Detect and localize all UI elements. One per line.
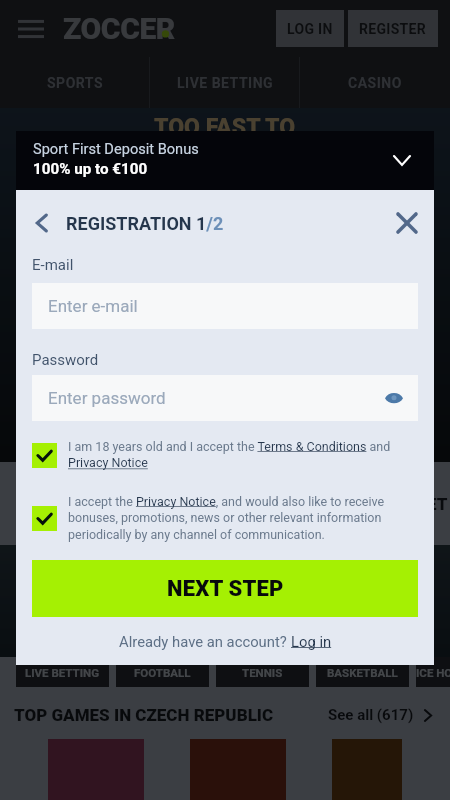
staticText: Enter password [48,388,166,408]
staticText: I am 18 years old and I accept the Terms… [68,439,418,471]
staticText: See all (617) [328,706,414,724]
button[interactable]: NEXT STEP [32,560,418,617]
button[interactable]: TOP GAMES IN CZECH REPUBLIC [14,705,434,725]
button[interactable]: REGISTER [348,10,438,47]
staticText: BASKETBALL [327,666,398,679]
staticText: ICE HOCKEY [416,666,450,679]
button[interactable]: Enter e-mail [32,283,418,329]
staticText: TENNIS [242,666,283,679]
button[interactable]: Back [32,213,52,233]
staticText: LOG IN [287,21,333,37]
staticText: SLEEP [191,142,259,169]
button[interactable]: Close [398,214,416,232]
staticText: SPORTS [47,75,104,91]
button[interactable]: BASKETBALL [316,657,409,687]
button[interactable]: Enter password [32,375,418,421]
staticText: REGISTER [359,21,427,37]
button[interactable]: ICE HOCKEY [416,657,450,687]
button[interactable]: SPORTS [0,57,150,108]
button[interactable]: FOOTBALL [116,657,209,687]
staticText: BET [416,494,448,514]
staticText: Enter e-mail [48,296,138,316]
button[interactable]: Show password [385,391,403,405]
button[interactable]: LOG IN [276,10,344,47]
staticText: ZOCCER [63,11,175,46]
staticText: LIVE BETTING [25,666,100,679]
staticText: Already have an account? [119,633,291,650]
staticText: 100% up to €100 [33,160,148,178]
button[interactable]: Log in [291,633,332,650]
button[interactable]: Sport First Deposit Bonus [16,131,434,190]
button[interactable]: TENNIS [216,657,309,687]
staticText: LIVE BETTING [177,75,274,91]
staticText: FOOTBALL [134,666,191,679]
other: Expand bonus [394,155,410,166]
button[interactable]: I accept the Privacy Notice, and would a… [32,494,418,543]
staticText: E-mail [32,256,74,274]
button[interactable]: CASINO [300,57,450,108]
staticText: Password [32,351,99,369]
staticText: I accept the Privacy Notice, and would a… [68,494,418,543]
staticText: NEXT STEP [167,576,284,602]
button[interactable]: LIVE BETTING [16,657,109,687]
staticText: CASINO [348,75,402,91]
staticText: TOP GAMES IN CZECH REPUBLIC [14,705,274,725]
staticText: TOO FAST TO [154,114,296,141]
button[interactable]: I am 18 years old and I accept the Terms… [32,439,418,471]
other: Menu [18,20,44,38]
button[interactable]: LIVE BETTING [150,57,300,108]
staticText: REGISTRATION 1/2 [66,213,224,234]
button[interactable]: BET [0,493,448,515]
staticText: Sport First Deposit Bonus [33,140,199,157]
